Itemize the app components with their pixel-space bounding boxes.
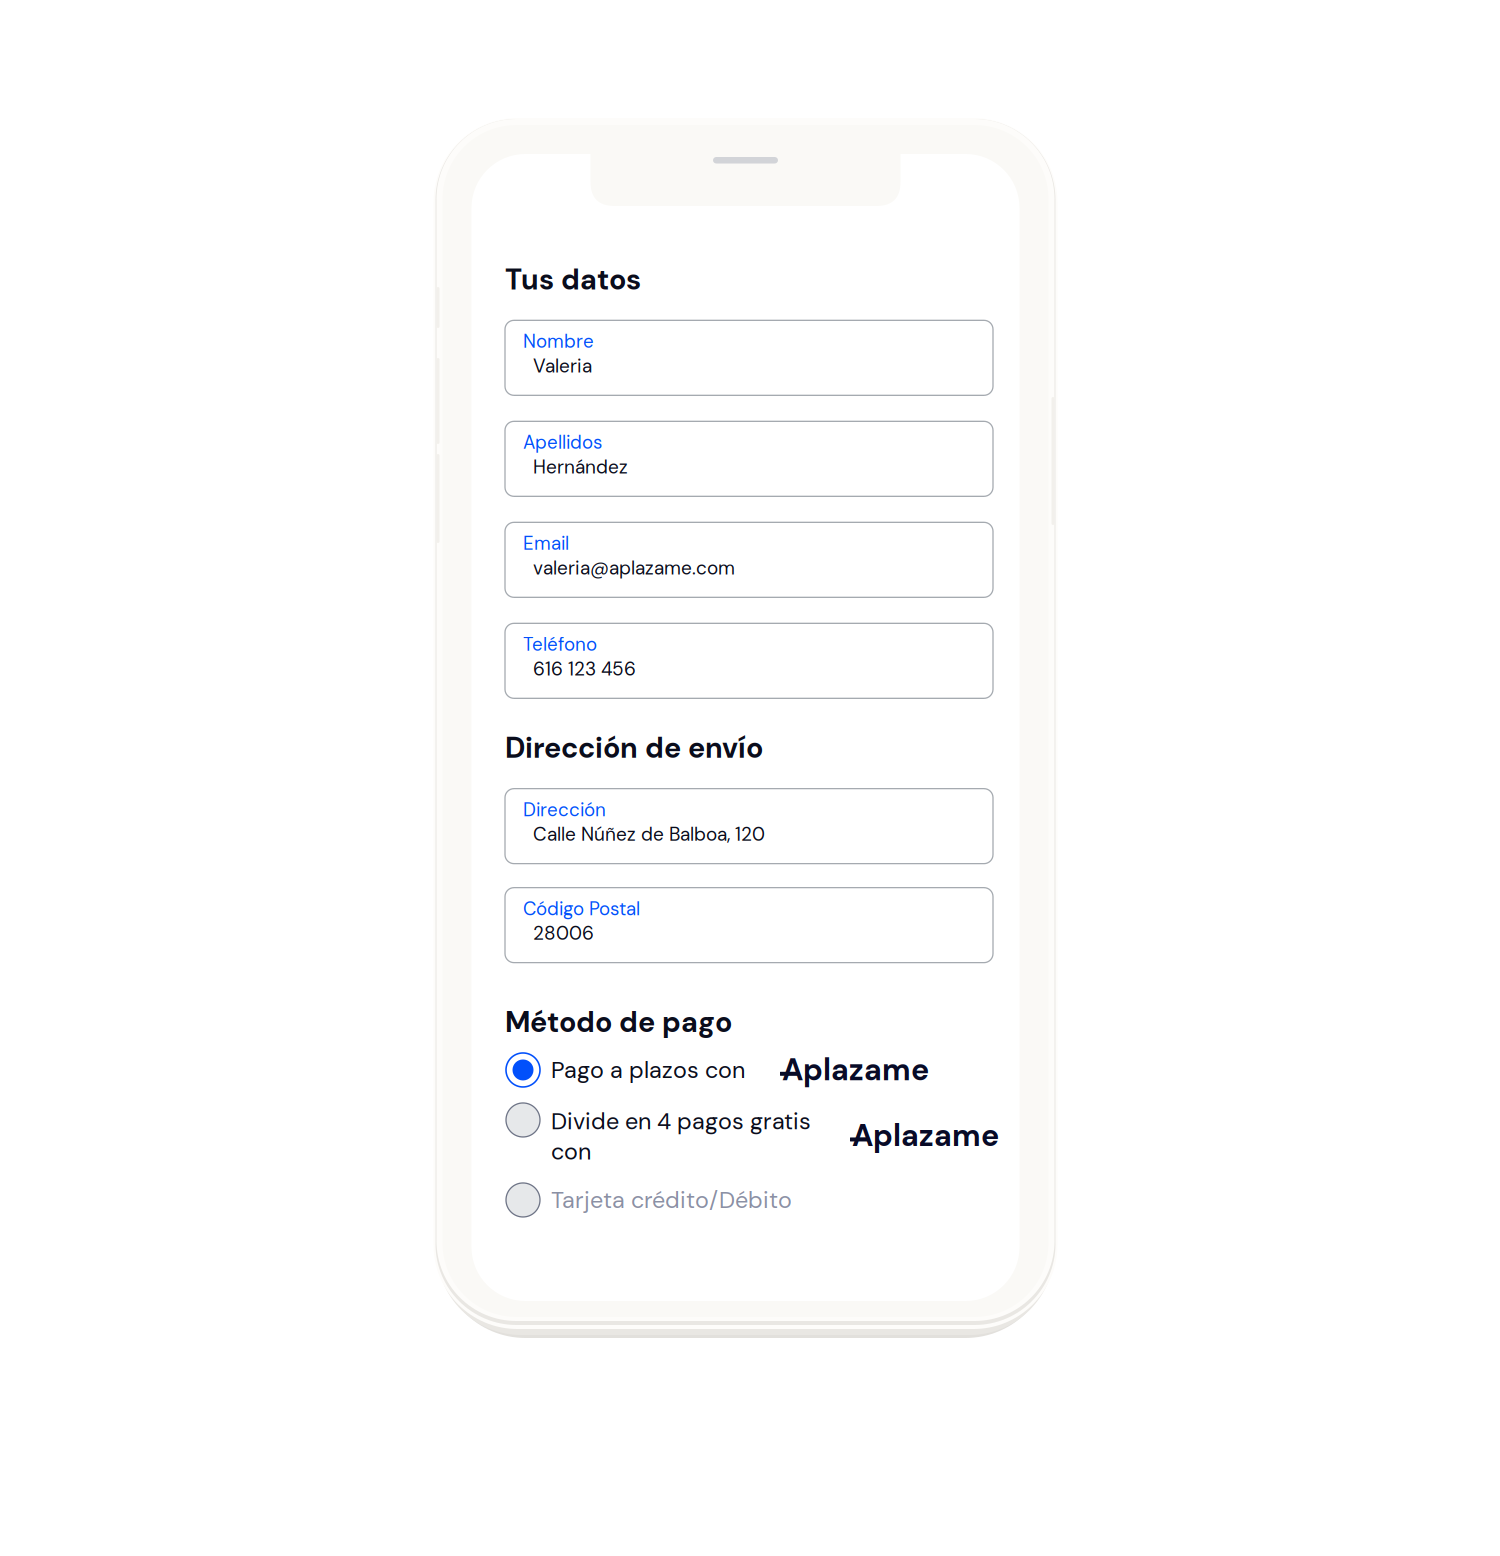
button[interactable]: Código Postal xyxy=(505,888,993,963)
button[interactable]: Divide en 4 pagos gratis con xyxy=(505,1098,993,1174)
staticText: Código Postal xyxy=(523,897,640,921)
button[interactable]: Tarjeta crédito/Débito xyxy=(505,1180,993,1220)
button[interactable]: Teléfono xyxy=(505,623,993,698)
staticText: Hernández xyxy=(533,455,628,479)
button[interactable]: Dirección xyxy=(505,789,993,864)
button[interactable]: Nombre xyxy=(505,320,993,395)
staticText: Valeria xyxy=(533,354,592,378)
staticText: Método de pago xyxy=(505,1004,732,1041)
staticText: 28006 xyxy=(533,921,594,946)
staticText: 616 123 456 xyxy=(533,657,636,681)
staticText: Nombre xyxy=(523,329,594,354)
staticText: valeria@aplazame.com xyxy=(533,556,735,580)
staticText: Tarjeta crédito/Débito xyxy=(551,1185,792,1215)
staticText: Calle Núñez de Balboa, 120 xyxy=(533,822,765,847)
staticText: Dirección de envío xyxy=(505,729,763,767)
staticText: Teléfono xyxy=(523,632,597,657)
staticText: Dirección xyxy=(523,798,606,822)
staticText: Aplazame xyxy=(852,1116,999,1155)
staticText: Aplazame xyxy=(782,1050,929,1090)
button[interactable]: Email xyxy=(505,522,993,597)
button[interactable]: Apellidos xyxy=(505,421,993,496)
staticText: Divide en 4 pagos gratis con xyxy=(551,1106,811,1167)
staticText: Apellidos xyxy=(523,430,602,455)
staticText: Email xyxy=(523,531,569,556)
staticText: Tus datos xyxy=(505,261,641,298)
button[interactable]: Pago a plazos con xyxy=(505,1050,993,1090)
staticText: Pago a plazos con xyxy=(551,1055,745,1085)
